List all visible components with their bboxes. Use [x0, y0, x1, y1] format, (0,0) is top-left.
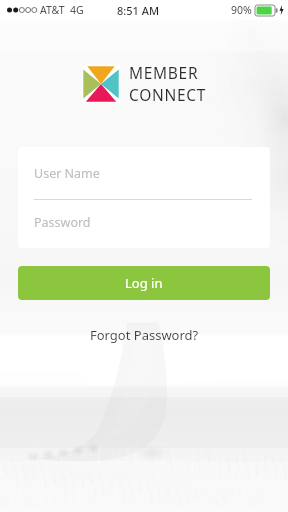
staticText: 90% — [231, 3, 252, 17]
button[interactable]: Log in — [18, 266, 270, 300]
staticText: Password — [34, 214, 91, 231]
staticText: MEMBER — [129, 62, 199, 83]
staticText: Log in — [125, 274, 163, 292]
staticText: CONNECT — [129, 84, 207, 105]
button[interactable]: Forgot Password? — [80, 322, 209, 348]
staticText: 4G — [70, 3, 84, 17]
button[interactable]: User Name — [18, 147, 270, 199]
staticText: AT&T — [40, 3, 65, 17]
staticText: 8:51 AM — [117, 3, 160, 18]
button[interactable]: Password — [18, 200, 270, 248]
staticText: Forgot Password? — [90, 326, 199, 344]
staticText: User Name — [34, 165, 100, 182]
